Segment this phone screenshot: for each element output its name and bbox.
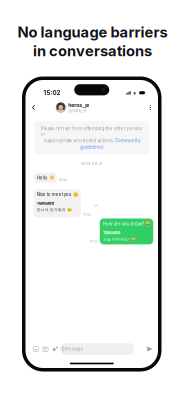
- staticText: Translated: [37, 201, 54, 205]
- button[interactable]: Message field: [60, 343, 134, 355]
- button[interactable]: Community: [115, 138, 140, 143]
- staticText: 2024. 08. 21: [81, 161, 103, 166]
- staticText: 만나서 반가워요 😊: [37, 207, 72, 212]
- staticText: Please refrain from offending the other …: [41, 126, 143, 137]
- staticText: guidelines: [80, 145, 103, 150]
- button[interactable]: More options: [146, 101, 155, 114]
- staticText: @heros_je: [68, 108, 86, 113]
- button[interactable]: Camera: [41, 342, 50, 356]
- staticText: 14:56: [83, 212, 91, 216]
- staticText: How are you today? 😄: [103, 221, 150, 227]
- button[interactable]: Hide translation: [93, 202, 99, 208]
- staticText: Translated: [103, 231, 120, 235]
- staticText: 14:57: [90, 239, 98, 243]
- staticText: 오늘 어떠세요? 😄: [103, 237, 136, 242]
- button[interactable]: heros_je: [56, 101, 89, 114]
- button[interactable]: guidelines: [80, 145, 103, 150]
- staticText: Community: [115, 138, 140, 143]
- button[interactable]: Send: [144, 342, 154, 356]
- staticText: inappropriate words and actions.: [43, 138, 113, 143]
- button[interactable]: Back: [29, 101, 38, 114]
- staticText: 15:02: [43, 89, 60, 97]
- staticText: Message: [64, 346, 83, 352]
- staticText: in conversations: [33, 42, 152, 60]
- staticText: Nice to meet you 😊: [37, 192, 78, 197]
- staticText: Hello 👋: [37, 175, 54, 180]
- button[interactable]: Auto translate: [50, 342, 60, 356]
- staticText: heros_je: [68, 102, 89, 108]
- button[interactable]: Add photo: [31, 342, 41, 356]
- staticText: 14:56: [59, 178, 67, 182]
- staticText: No language barriers: [17, 23, 167, 41]
